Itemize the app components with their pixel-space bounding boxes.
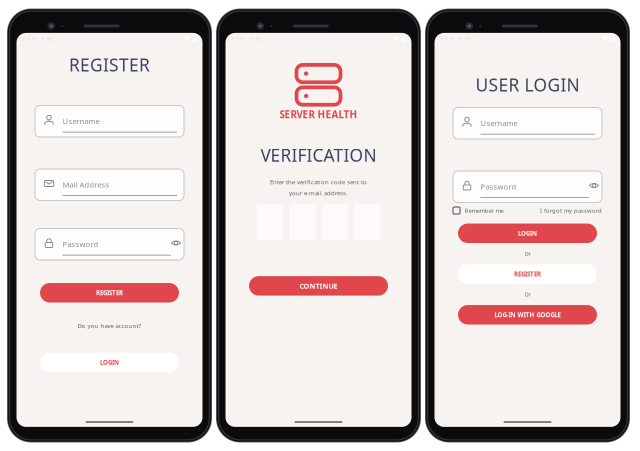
- staticText: REGISTER: [96, 289, 123, 297]
- staticText: VERIFICATION: [260, 143, 376, 167]
- staticText: SERVER HEALTH: [279, 108, 357, 121]
- button[interactable]: REGISTER: [40, 283, 179, 302]
- button[interactable]: LOGIN: [40, 353, 179, 372]
- staticText: Or: [524, 291, 530, 298]
- staticText: Password: [62, 239, 98, 249]
- staticText: Enter the verification code sent to: [270, 178, 367, 186]
- staticText: REGISTER: [514, 270, 541, 278]
- button[interactable]: CONTINUE: [249, 276, 388, 296]
- staticText: Username: [480, 118, 517, 128]
- button[interactable]: I forgot my password: [540, 205, 602, 215]
- staticText: Mail Address: [62, 179, 109, 190]
- staticText: REGISTER: [69, 53, 150, 76]
- staticText: LOGIN: [518, 229, 537, 237]
- button[interactable]: Username: [453, 107, 602, 139]
- staticText: CONTINUE: [299, 281, 337, 291]
- staticText: Password: [480, 181, 516, 192]
- button[interactable]: Password: [35, 228, 184, 260]
- staticText: LOG-IN WITH GOOGLE: [494, 311, 560, 319]
- button[interactable]: Password: [453, 171, 602, 202]
- button[interactable]: REGISTER: [458, 264, 597, 284]
- staticText: I forgot my password: [540, 206, 602, 214]
- staticText: your e-mail address.: [289, 189, 348, 197]
- button[interactable]: Remember me: [453, 205, 503, 215]
- button[interactable]: Username: [35, 105, 184, 137]
- button[interactable]: Mail Address: [35, 169, 184, 200]
- button[interactable]: LOGIN: [458, 223, 597, 243]
- staticText: Username: [62, 116, 99, 126]
- button[interactable]: LOG-IN WITH GOOGLE: [458, 305, 597, 324]
- staticText: LOGIN: [100, 358, 119, 367]
- staticText: Remember me: [464, 206, 503, 214]
- staticText: Or: [524, 250, 530, 257]
- staticText: Do you have account?: [77, 321, 141, 330]
- staticText: USER LOGIN: [475, 73, 579, 96]
